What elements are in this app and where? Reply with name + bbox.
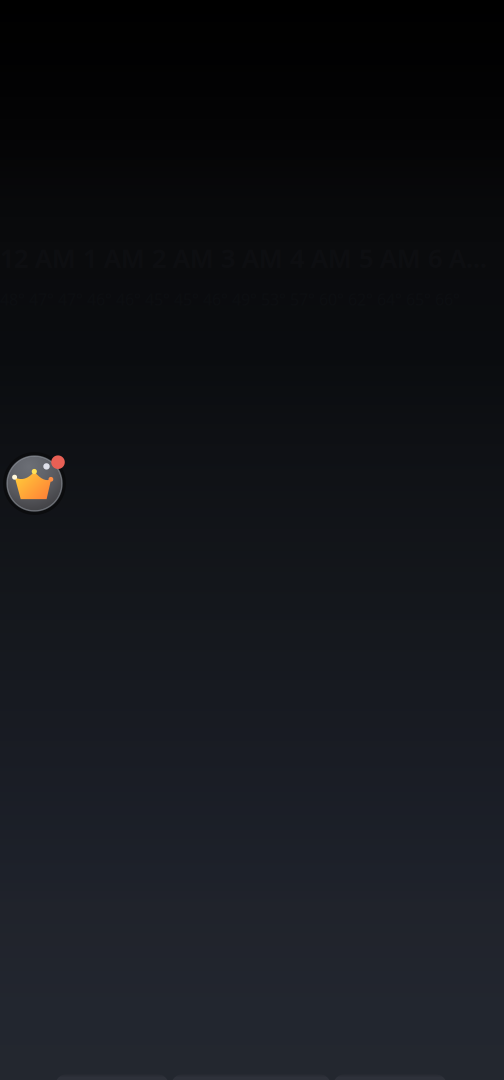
button[interactable]: Card one <box>55 1074 169 1080</box>
button[interactable]: Crown <box>3 452 69 518</box>
button[interactable]: Card two <box>171 1074 331 1080</box>
button[interactable]: Card three <box>333 1074 447 1080</box>
